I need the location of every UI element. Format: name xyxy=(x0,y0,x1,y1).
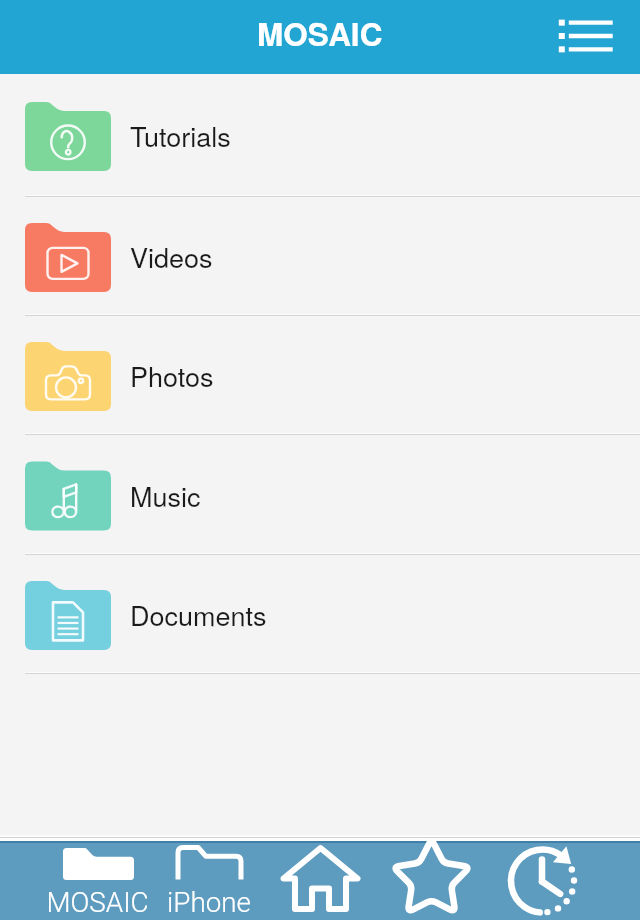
staticText: iPhone xyxy=(167,886,251,919)
staticText: Tutorials xyxy=(130,116,231,155)
button[interactable]: Home xyxy=(265,843,376,920)
button[interactable]: Photos xyxy=(0,316,640,435)
button[interactable]: Recents xyxy=(487,843,598,920)
button[interactable]: MOSAIC xyxy=(43,843,154,920)
staticText: MOSAIC xyxy=(46,886,149,919)
button[interactable]: Documents xyxy=(0,555,640,674)
staticText: Music xyxy=(130,476,201,515)
button[interactable]: Favourites xyxy=(376,843,487,920)
staticText: Videos xyxy=(130,237,213,276)
staticText: MOSAIC xyxy=(257,11,383,56)
staticText: Documents xyxy=(130,595,267,634)
button[interactable]: Tutorials xyxy=(0,74,640,197)
staticText: Photos xyxy=(130,356,214,395)
button[interactable]: Music xyxy=(0,435,640,555)
button[interactable]: iPhone xyxy=(154,843,265,920)
button[interactable]: Videos xyxy=(0,197,640,316)
button[interactable]: Menu xyxy=(540,0,614,74)
